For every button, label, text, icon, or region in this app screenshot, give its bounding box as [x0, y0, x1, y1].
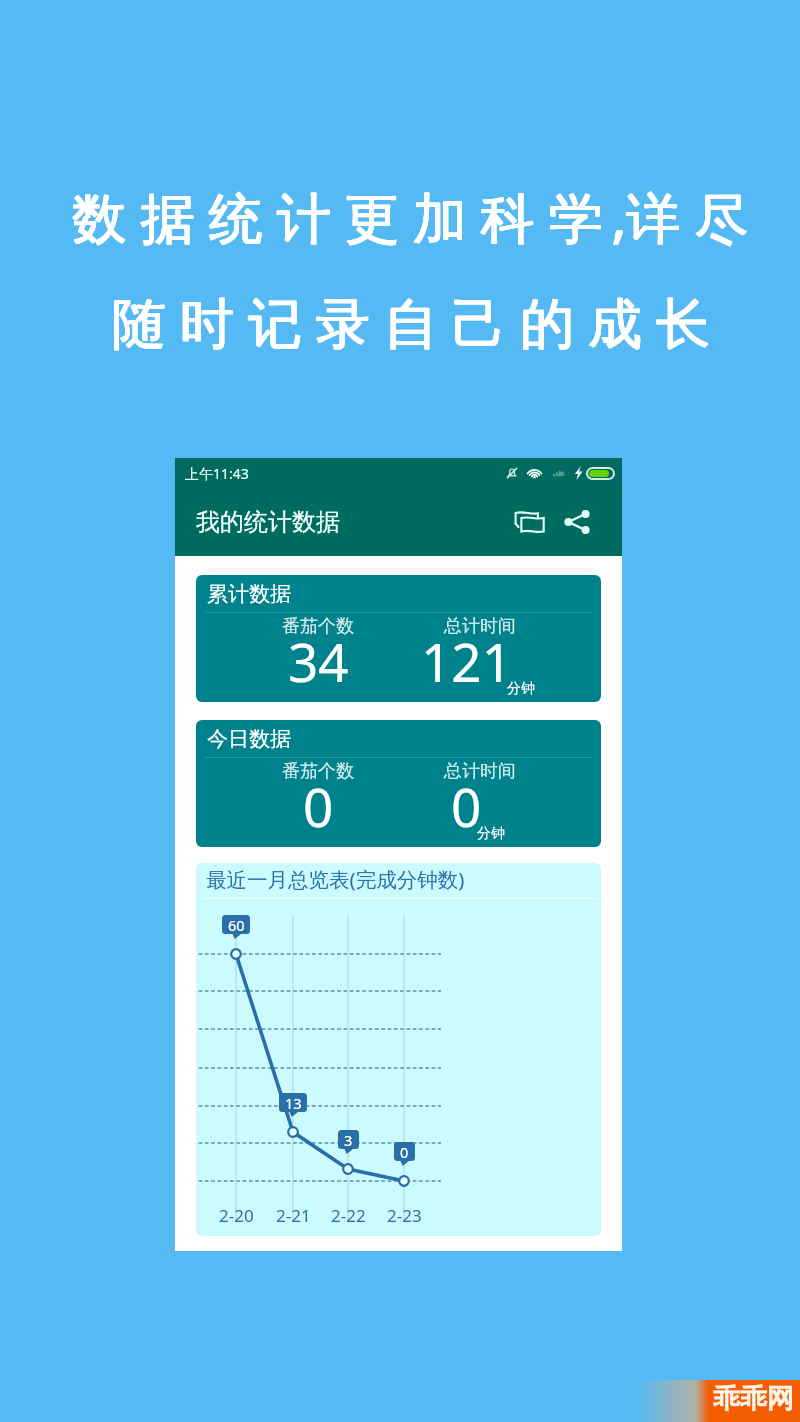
- staticText: 2-21: [276, 1204, 311, 1227]
- staticText: 2-20: [219, 1204, 254, 1227]
- staticText: 0: [400, 1142, 409, 1161]
- staticText: 34: [288, 625, 349, 697]
- staticText: 上午11:43: [185, 464, 249, 483]
- staticText: 乖乖网: [713, 1382, 794, 1412]
- staticText: 随 时 记 录 自 己 的 成 长: [112, 285, 711, 359]
- staticText: 番茄个数: [282, 760, 354, 783]
- staticText: 数 据 统 计 更 加 科 学 ,详 尽: [73, 179, 749, 253]
- button[interactable]: 累计数据: [196, 575, 601, 702]
- staticText: 随 时 记 录 自 己 的 成 长: [111, 284, 710, 358]
- staticText: 分钟: [507, 680, 535, 698]
- button[interactable]: Records: [508, 500, 552, 544]
- staticText: 121: [421, 625, 512, 697]
- staticText: 总计时间: [444, 760, 516, 783]
- staticText: 60: [228, 915, 245, 934]
- staticText: 累计数据: [207, 581, 291, 607]
- staticText: 随 时 记 录 自 己 的 成 长: [111, 285, 710, 359]
- staticText: 13: [285, 1093, 302, 1112]
- staticText: 0: [451, 770, 482, 842]
- staticText: 总计时间: [444, 615, 516, 638]
- button[interactable]: 今日数据: [196, 720, 601, 847]
- staticText: 分钟: [477, 825, 505, 843]
- staticText: 3: [344, 1130, 353, 1149]
- staticText: 2-22: [331, 1204, 366, 1227]
- staticText: 数 据 统 计 更 加 科 学 ,详 尽: [72, 179, 748, 253]
- staticText: 随 时 记 录 自 己 的 成 长: [112, 284, 711, 358]
- staticText: 数 据 统 计 更 加 科 学 ,详 尽: [73, 180, 749, 254]
- staticText: 今日数据: [207, 726, 291, 752]
- staticText: 最近一月总览表(完成分钟数): [206, 865, 465, 893]
- staticText: 2-23: [387, 1204, 422, 1227]
- staticText: 0: [303, 770, 334, 842]
- button[interactable]: 最近一月总览表(完成分钟数): [196, 863, 601, 1236]
- staticText: 我的统计数据: [196, 507, 340, 537]
- staticText: 番茄个数: [282, 615, 354, 638]
- staticText: 数 据 统 计 更 加 科 学 ,详 尽: [72, 180, 748, 254]
- button[interactable]: Share: [555, 500, 599, 544]
